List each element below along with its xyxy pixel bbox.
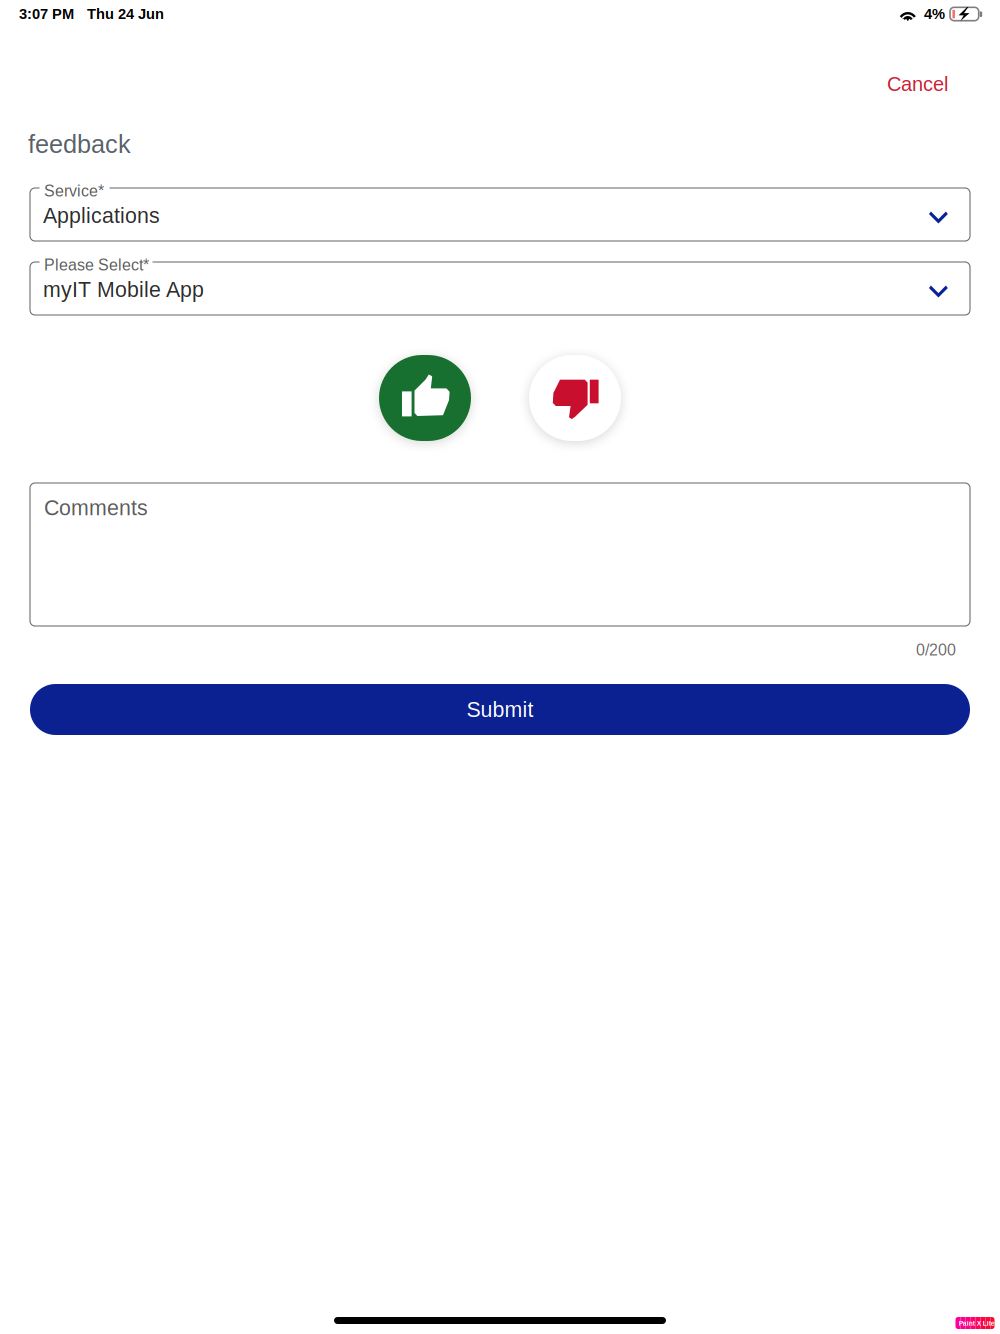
staticText: Comments: [44, 496, 148, 520]
staticText: Paint X Lite: [959, 1320, 995, 1327]
staticText: Please Select*: [44, 256, 149, 274]
staticText: Cancel: [887, 73, 948, 95]
staticText: Submit: [466, 698, 533, 721]
staticText: 4%: [924, 6, 945, 22]
button[interactable]: Please Select*: [30, 262, 970, 315]
button[interactable]: Submit: [30, 684, 970, 735]
button[interactable]: Service*: [30, 188, 970, 241]
button[interactable]: Cancel: [877, 66, 958, 102]
staticText: 0/200: [916, 641, 956, 659]
staticText: feedback: [28, 130, 131, 158]
staticText: Thu 24 Jun: [87, 6, 164, 22]
staticText: Service*: [44, 182, 104, 200]
button[interactable]: Comments: [30, 483, 970, 626]
button[interactable]: Thumbs down: [529, 355, 621, 441]
staticText: myIT Mobile App: [43, 278, 204, 301]
button[interactable]: Thumbs up: [379, 355, 471, 441]
staticText: Applications: [43, 204, 160, 227]
staticText: 3:07 PM: [19, 6, 74, 22]
